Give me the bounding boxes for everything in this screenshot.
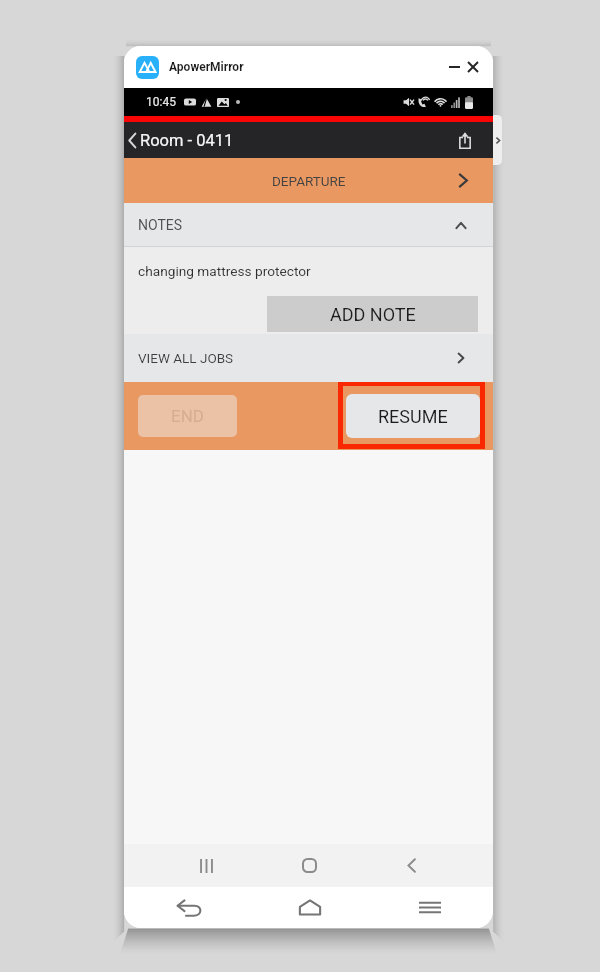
button[interactable]: DEPARTURE — [124, 158, 493, 203]
button[interactable]: VIEW ALL JOBS — [124, 334, 493, 382]
button[interactable]: Home — [284, 844, 334, 887]
button[interactable]: Close — [460, 52, 485, 82]
staticText: END — [171, 406, 204, 426]
staticText: NOTES — [138, 217, 183, 233]
button[interactable]: Minimize — [449, 52, 460, 82]
button[interactable]: Expand panel — [493, 115, 502, 165]
button[interactable]: Share — [436, 122, 493, 158]
staticText: Room - 0411 — [140, 131, 234, 150]
staticText: ApowerMirror — [169, 60, 244, 74]
staticText: VIEW ALL JOBS — [138, 350, 234, 366]
button[interactable]: RESUME — [346, 394, 480, 438]
button[interactable]: ADD NOTE — [267, 296, 478, 332]
button[interactable]: END — [138, 395, 237, 437]
staticText: ADD NOTE — [330, 304, 416, 325]
button[interactable]: Back — [386, 844, 436, 887]
staticText: DEPARTURE — [272, 173, 346, 189]
staticText: changing mattress protector — [138, 263, 311, 279]
button[interactable]: Menu — [405, 887, 455, 928]
staticText: 10:45 — [146, 95, 176, 109]
button[interactable]: Recents — [181, 844, 231, 887]
button[interactable]: Back — [164, 887, 214, 928]
button[interactable]: Room - 0411 — [124, 122, 240, 158]
button[interactable]: Home — [285, 887, 335, 928]
staticText: RESUME — [378, 406, 448, 427]
button[interactable]: NOTES — [124, 203, 493, 247]
